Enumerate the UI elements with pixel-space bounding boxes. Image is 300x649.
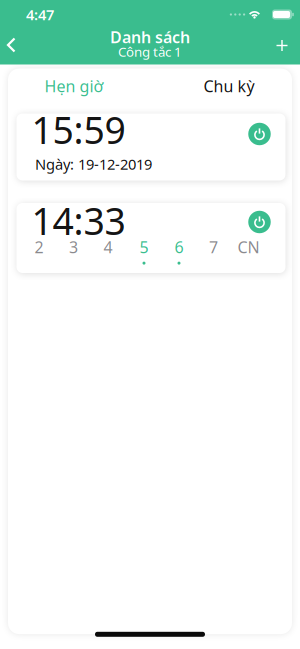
- staticText: Ngày: 19-12-2019: [35, 154, 152, 174]
- button[interactable]: Bật/tắt hẹn giờ: [248, 211, 271, 233]
- button[interactable]: 15:59: [16, 113, 285, 180]
- staticText: Công tắc 1: [118, 43, 182, 60]
- staticText: CN: [237, 236, 259, 258]
- button[interactable]: Back: [0, 28, 26, 62]
- staticText: 14:33: [31, 196, 125, 245]
- button[interactable]: Thêm hẹn giờ: [267, 28, 297, 62]
- button[interactable]: Chu kỳ: [159, 69, 299, 103]
- staticText: 15:59: [31, 105, 125, 154]
- staticText: Danh sách: [110, 26, 190, 48]
- button[interactable]: Bật/tắt hẹn giờ: [248, 123, 271, 145]
- staticText: 4:47: [26, 5, 54, 24]
- staticText: 7: [209, 236, 218, 258]
- staticText: 2: [34, 236, 43, 258]
- staticText: 3: [69, 236, 78, 258]
- staticText: Hẹn giờ: [44, 75, 103, 97]
- staticText: 4: [103, 236, 112, 258]
- button[interactable]: 14:33: [16, 203, 285, 273]
- button[interactable]: Hẹn giờ: [4, 69, 144, 103]
- staticText: 5: [139, 236, 148, 258]
- staticText: 6: [174, 236, 183, 258]
- staticText: Chu kỳ: [203, 75, 254, 97]
